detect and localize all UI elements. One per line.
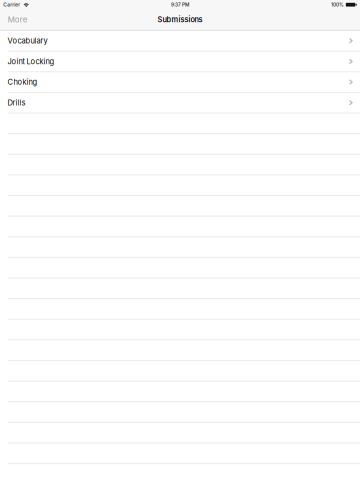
staticText: Submissions bbox=[157, 15, 202, 24]
staticText: Vocabulary bbox=[7, 36, 47, 45]
button[interactable]: Joint Locking bbox=[0, 51, 360, 71]
button[interactable]: Choking bbox=[0, 71, 360, 92]
staticText: Carrier bbox=[3, 2, 20, 8]
button[interactable]: Vocabulary bbox=[0, 30, 360, 51]
staticText: More bbox=[8, 15, 28, 24]
staticText: Drills bbox=[7, 98, 25, 107]
button[interactable]: More bbox=[0, 9, 33, 30]
staticText: Choking bbox=[7, 78, 37, 86]
staticText: Joint Locking bbox=[7, 57, 54, 66]
staticText: 100% bbox=[331, 2, 344, 8]
button[interactable]: Drills bbox=[0, 92, 360, 112]
staticText: 9:37 PM bbox=[171, 2, 189, 8]
